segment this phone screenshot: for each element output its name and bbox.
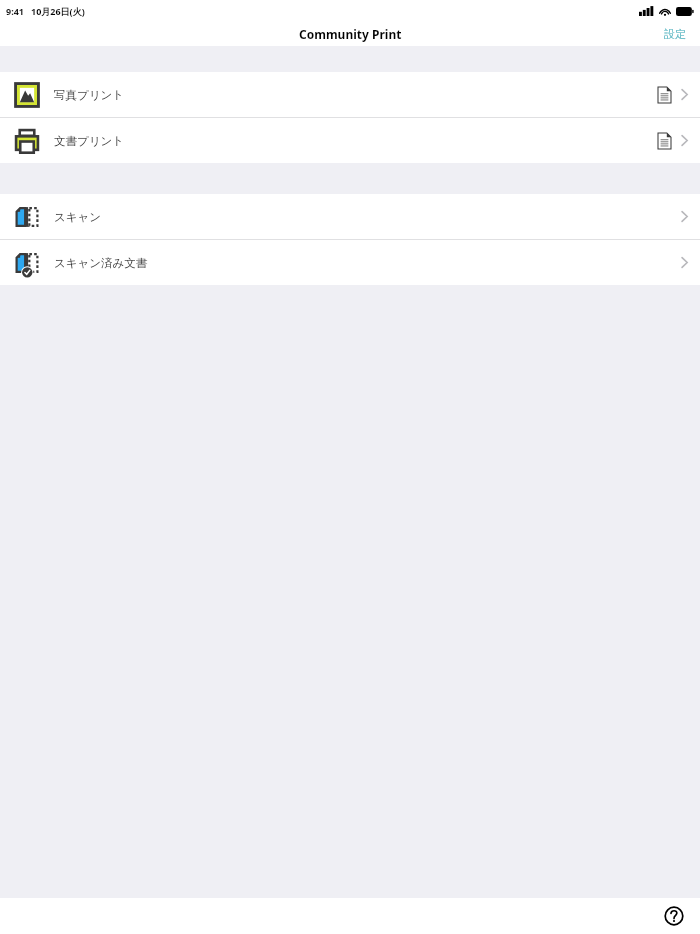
staticText: 文書プリント [54,134,125,148]
button[interactable]: 写真プリント [0,72,700,117]
button[interactable]: Help [658,900,690,932]
staticText: Community Print [299,26,402,42]
button[interactable]: 文書プリント [0,118,700,163]
button[interactable]: 設定 [650,24,700,44]
staticText: スキャン [54,210,102,224]
staticText: 9:41 [6,5,24,17]
staticText: 設定 [664,27,686,41]
staticText: 10月26日(火) [31,5,85,17]
button[interactable]: スキャン [0,194,700,239]
staticText: スキャン済み文書 [54,256,148,270]
staticText: 写真プリント [54,88,125,102]
button[interactable]: スキャン済み文書 [0,240,700,285]
